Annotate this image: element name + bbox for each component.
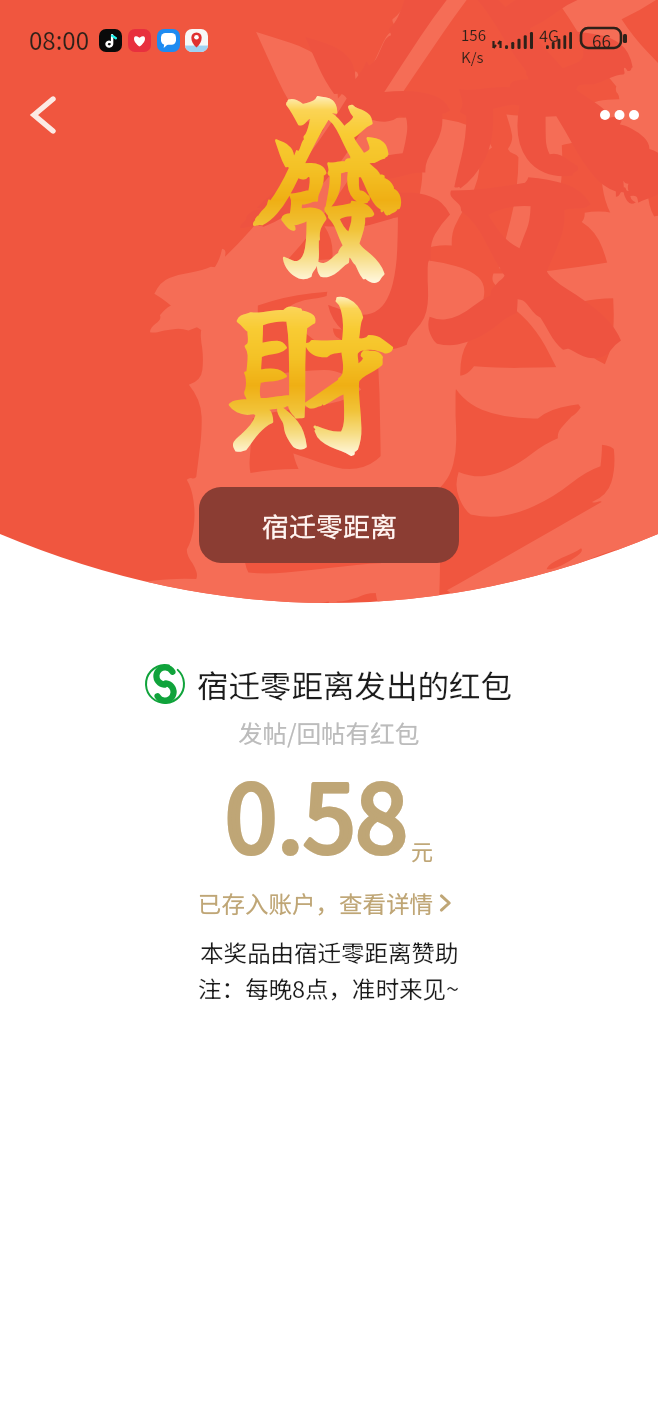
staticText: 0.58 bbox=[225, 744, 408, 880]
staticText: 66 bbox=[592, 28, 611, 48]
button[interactable]: More options bbox=[595, 92, 649, 138]
staticText: 元 bbox=[411, 834, 434, 866]
staticText: 4G bbox=[539, 23, 559, 46]
staticText: 发帖/回帖有红包 bbox=[238, 715, 420, 750]
staticText: 08:00 bbox=[29, 22, 89, 57]
staticText: K/s bbox=[461, 46, 484, 68]
staticText: 0.58 bbox=[225, 744, 408, 880]
button[interactable]: 宿迁零距离 bbox=[199, 487, 459, 563]
button[interactable]: Back bbox=[10, 89, 60, 141]
staticText: 注：每晚8点，准时来见~ bbox=[198, 971, 460, 1005]
staticText: 宿迁零距离发出的红包 bbox=[197, 661, 513, 707]
button[interactable]: 已存入账户，查看详情 bbox=[194, 881, 465, 925]
staticText: 本奖品由宿迁零距离赞助 bbox=[200, 935, 459, 969]
staticText: 已存入账户，查看详情 bbox=[198, 886, 433, 920]
staticText: 宿迁零距离 bbox=[262, 506, 397, 545]
staticText: 156 bbox=[461, 24, 486, 46]
